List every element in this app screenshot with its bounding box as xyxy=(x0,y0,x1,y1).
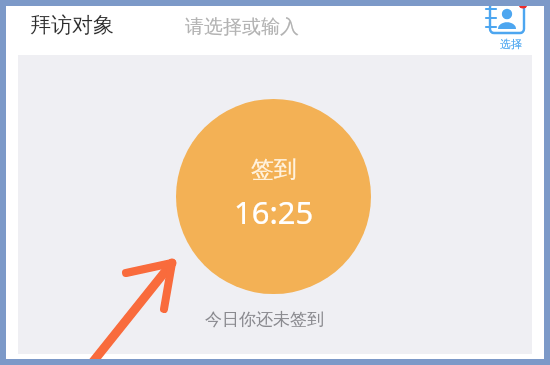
button[interactable]: 请选择或输入 xyxy=(178,4,468,49)
staticText: 选择 xyxy=(500,37,522,51)
button[interactable]: 选择联系人 xyxy=(482,0,536,52)
staticText: 今日你还未签到 xyxy=(205,309,324,330)
staticText: 签到 xyxy=(251,155,297,184)
staticText: 拜访对象 xyxy=(30,12,114,38)
staticText: 16:25 xyxy=(234,191,314,233)
staticText: 请选择或输入 xyxy=(185,15,299,39)
button[interactable]: 签到 xyxy=(176,99,371,294)
